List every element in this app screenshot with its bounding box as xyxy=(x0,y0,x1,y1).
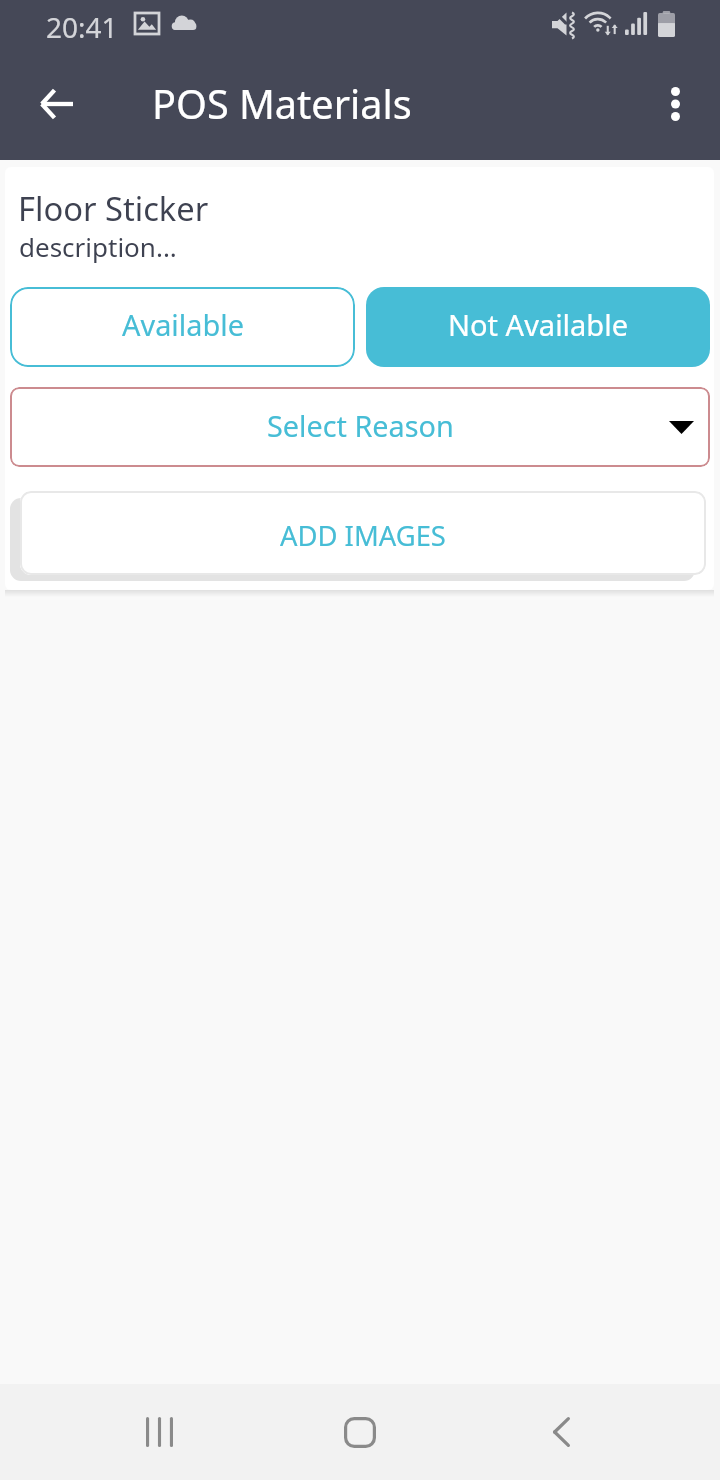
button[interactable]: Back xyxy=(501,1384,621,1480)
staticText: POS Materials xyxy=(152,77,412,131)
staticText: Floor Sticker xyxy=(18,186,209,231)
button[interactable]: Recent apps xyxy=(99,1384,219,1480)
staticText: ADD IMAGES xyxy=(280,517,446,554)
staticText: Not Available xyxy=(448,305,629,344)
button[interactable]: Home xyxy=(300,1384,420,1480)
staticText: Available xyxy=(122,305,244,344)
staticText: description... xyxy=(19,229,177,264)
button[interactable]: More options xyxy=(624,56,720,160)
button[interactable]: Select Reason xyxy=(10,387,710,467)
button[interactable]: Not Available xyxy=(366,287,710,367)
button[interactable]: ADD IMAGES xyxy=(20,491,706,575)
staticText: 20:41 xyxy=(46,8,118,46)
staticText: Select Reason xyxy=(267,406,454,445)
button[interactable]: Navigate up xyxy=(8,56,104,160)
button[interactable]: Available xyxy=(10,287,355,367)
